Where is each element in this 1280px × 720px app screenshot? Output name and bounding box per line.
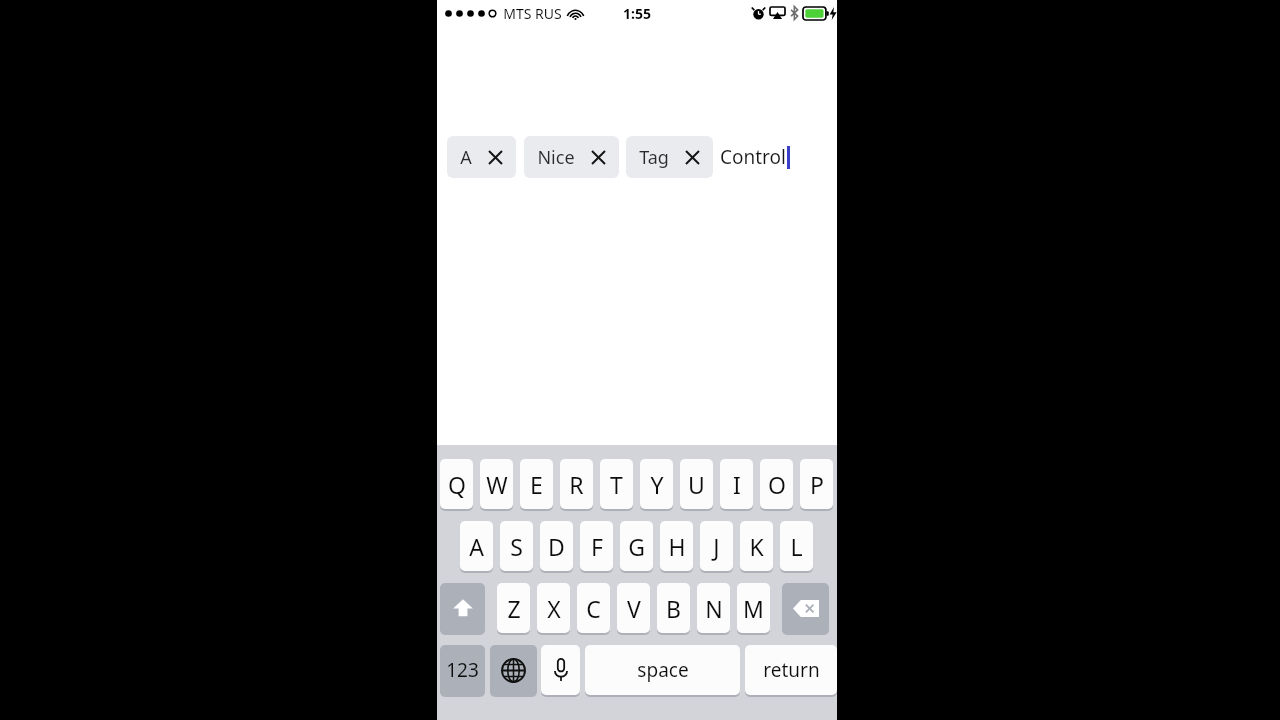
staticText: D <box>548 531 565 562</box>
button[interactable]: G <box>620 521 653 571</box>
button[interactable]: 123 <box>440 645 485 695</box>
button[interactable]: P <box>800 459 833 509</box>
button[interactable]: X <box>537 583 570 633</box>
staticText: R <box>569 469 584 500</box>
button[interactable]: Q <box>440 459 473 509</box>
staticText: A <box>460 145 472 170</box>
button[interactable]: D <box>540 521 573 571</box>
staticText: W <box>486 469 508 500</box>
staticText: E <box>530 469 543 500</box>
staticText: B <box>666 593 681 624</box>
staticText: Tag <box>639 145 669 170</box>
button[interactable]: O <box>760 459 793 509</box>
button[interactable]: L <box>780 521 813 571</box>
button[interactable]: Nice <box>524 136 619 178</box>
staticText: I <box>733 469 741 500</box>
staticText: C <box>586 593 601 624</box>
staticText: MTS RUS <box>503 4 562 23</box>
button[interactable]: R <box>560 459 593 509</box>
button[interactable]: H <box>660 521 693 571</box>
button[interactable]: space <box>585 645 740 695</box>
staticText: Nice <box>537 145 575 170</box>
button[interactable]: return <box>745 645 837 695</box>
button[interactable]: A <box>460 521 493 571</box>
staticText: space <box>637 657 689 683</box>
button[interactable]: Dictation <box>541 645 580 695</box>
staticText: V <box>627 593 641 624</box>
staticText: U <box>688 469 705 500</box>
staticText: S <box>510 531 523 562</box>
button[interactable]: S <box>500 521 533 571</box>
button[interactable]: U <box>680 459 713 509</box>
staticText: F <box>591 531 603 562</box>
button[interactable]: Remove Tag <box>682 147 702 167</box>
button[interactable]: T <box>600 459 633 509</box>
button[interactable]: Remove A <box>485 147 505 167</box>
staticText: O <box>768 469 786 500</box>
button[interactable]: I <box>720 459 753 509</box>
button[interactable]: E <box>520 459 553 509</box>
staticText: X <box>547 593 561 624</box>
staticText: L <box>790 531 803 562</box>
staticText: A <box>469 531 484 562</box>
button[interactable]: Y <box>640 459 673 509</box>
staticText: return <box>763 657 820 683</box>
staticText: J <box>713 531 720 562</box>
button[interactable]: K <box>740 521 773 571</box>
button[interactable]: Z <box>497 583 530 633</box>
button[interactable]: C <box>577 583 610 633</box>
button[interactable]: W <box>480 459 513 509</box>
button[interactable]: A <box>447 136 516 178</box>
staticText: 123 <box>446 657 479 683</box>
staticText: Z <box>507 593 521 624</box>
button[interactable]: V <box>617 583 650 633</box>
staticText: Control <box>720 144 786 170</box>
button[interactable]: Remove Nice <box>588 147 608 167</box>
button[interactable]: Tag <box>626 136 713 178</box>
staticText: G <box>628 531 645 562</box>
button[interactable]: Shift <box>440 583 485 633</box>
staticText: Q <box>448 469 466 500</box>
button[interactable]: B <box>657 583 690 633</box>
staticText: H <box>668 531 686 562</box>
staticText: P <box>810 469 824 500</box>
button[interactable]: F <box>580 521 613 571</box>
button[interactable]: Backspace <box>782 583 829 633</box>
staticText: M <box>743 593 764 624</box>
staticText: 1:55 <box>623 4 651 23</box>
button[interactable]: M <box>737 583 770 633</box>
staticText: Y <box>650 469 664 500</box>
staticText: N <box>705 593 723 624</box>
button[interactable]: Change keyboard <box>490 645 537 695</box>
button[interactable]: N <box>697 583 730 633</box>
button[interactable]: J <box>700 521 733 571</box>
staticText: T <box>610 469 623 500</box>
staticText: K <box>749 531 764 562</box>
